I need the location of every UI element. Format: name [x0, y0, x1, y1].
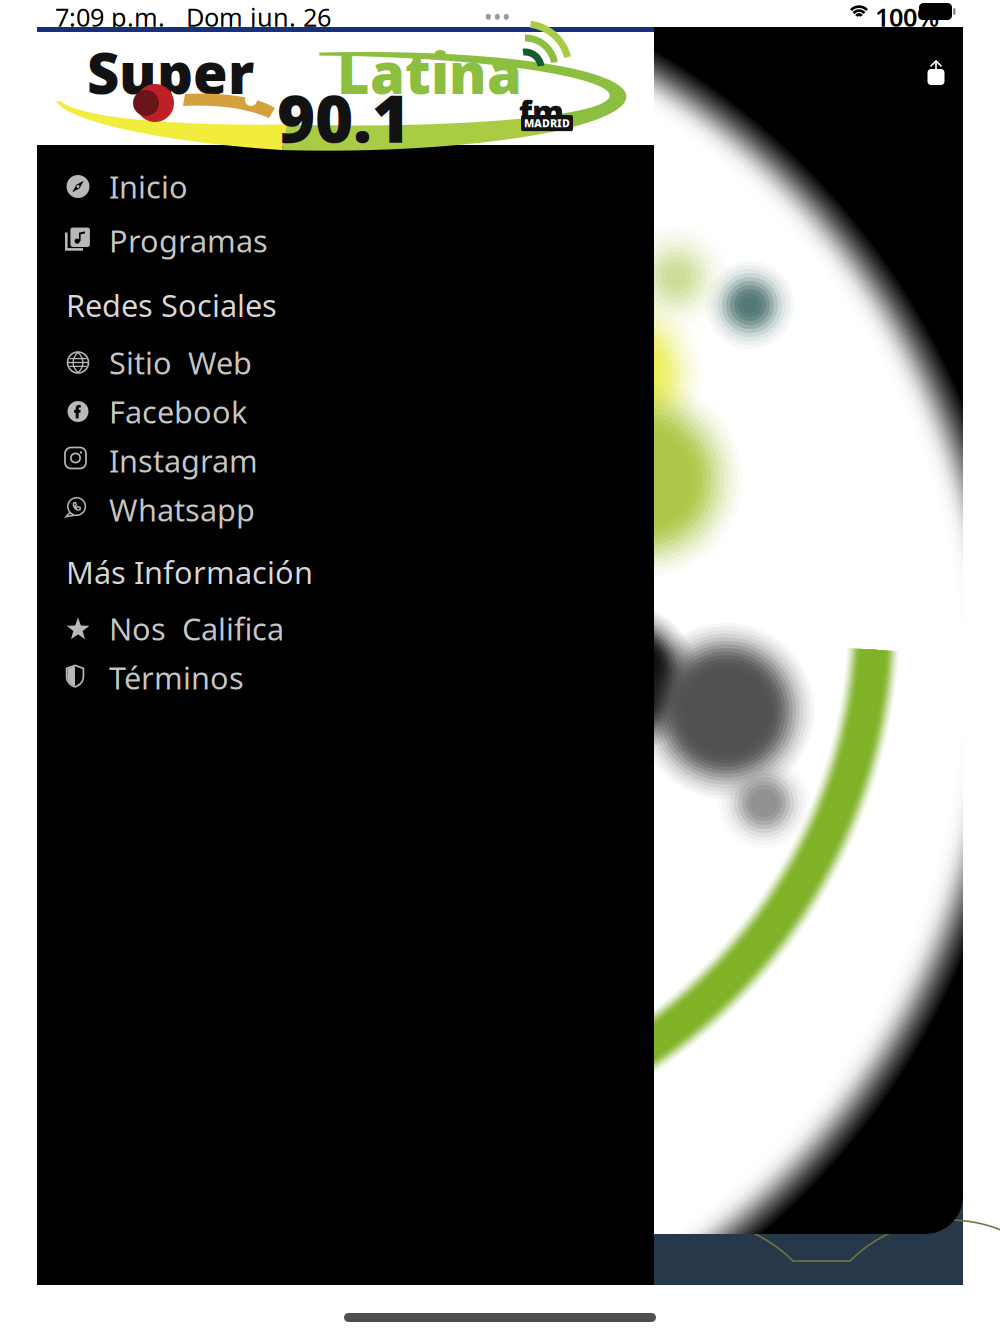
button[interactable]: Facebook [37, 387, 654, 436]
staticText: Instagram [109, 440, 258, 481]
button[interactable]: Sitio Web [37, 338, 654, 387]
staticText: Whatsapp [109, 489, 255, 530]
staticText: ••• [484, 2, 511, 32]
staticText: 90.1 [277, 74, 410, 161]
staticText: Nos Califica [109, 608, 284, 649]
button[interactable]: Instagram [37, 436, 654, 485]
button[interactable]: Nos Califica [37, 604, 654, 653]
staticText: Facebook [109, 391, 247, 432]
button[interactable]: Share [912, 48, 960, 96]
staticText: Super [87, 35, 254, 109]
staticText: Redes Sociales [66, 285, 277, 325]
button[interactable]: Programas [37, 216, 654, 265]
staticText: Sitio Web [109, 342, 252, 383]
staticText: 100% [875, 0, 939, 34]
staticText: MADRID [524, 116, 570, 130]
button[interactable]: Términos [37, 653, 654, 702]
staticText: Términos [109, 657, 244, 698]
staticText: Programas [109, 220, 268, 261]
staticText: Más Información [66, 552, 313, 592]
staticText: 7:09 p.m. Dom jun. 26 [55, 0, 331, 34]
staticText: Inicio [109, 166, 188, 207]
button[interactable]: Inicio [37, 162, 654, 211]
staticText: Latina [337, 35, 522, 109]
button[interactable]: Whatsapp [37, 485, 654, 534]
staticText: fm [519, 90, 564, 132]
